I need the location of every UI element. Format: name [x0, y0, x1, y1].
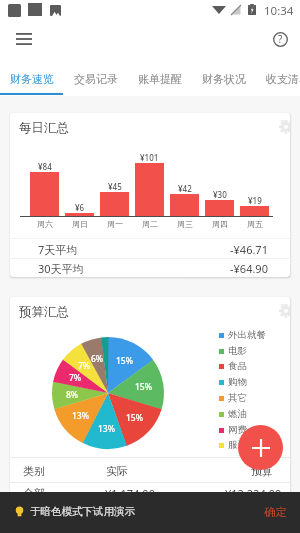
- staticText: 收支清单: [266, 72, 300, 86]
- staticText: 其它: [228, 392, 247, 404]
- staticText: 实际: [106, 464, 128, 478]
- staticText: 8%: [66, 389, 79, 401]
- staticText: 15%: [135, 381, 152, 393]
- staticText: 财务速览: [10, 72, 54, 86]
- staticText: 网费: [228, 424, 247, 436]
- staticText: 周二: [142, 219, 158, 229]
- staticText: 6%: [91, 353, 104, 365]
- staticText: 周三: [177, 219, 193, 229]
- staticText: 服装: [228, 439, 247, 451]
- button[interactable]: Add transaction: [238, 425, 283, 470]
- button[interactable]: 财务速览: [0, 65, 64, 93]
- button[interactable]: Settings: [276, 117, 290, 137]
- staticText: ¥6: [75, 202, 85, 213]
- button[interactable]: 7天平均: [10, 239, 290, 258]
- staticText: 周五: [247, 219, 263, 229]
- staticText: -¥64.90: [230, 261, 268, 276]
- button[interactable]: Help: [265, 24, 295, 54]
- staticText: 全部: [23, 486, 45, 500]
- staticText: 于暗色模式下试用演示: [30, 505, 135, 518]
- button[interactable]: 全部: [10, 483, 290, 505]
- staticText: 交易记录: [74, 72, 118, 86]
- staticText: ¥1,174.00: [105, 486, 155, 501]
- staticText: 燃油: [228, 408, 247, 420]
- button[interactable]: 确定: [256, 500, 294, 524]
- staticText: ¥12,224.00: [225, 486, 282, 501]
- staticText: 30天平均: [38, 261, 84, 276]
- staticText: 电影: [228, 345, 247, 357]
- button[interactable]: 账单提醒: [128, 65, 192, 93]
- button[interactable]: 交易记录: [64, 65, 128, 93]
- staticText: 7天平均: [38, 242, 78, 257]
- staticText: 7%: [78, 360, 91, 372]
- staticText: 购物: [228, 376, 247, 388]
- staticText: 15%: [126, 412, 143, 424]
- staticText: 15%: [116, 355, 133, 367]
- staticText: 13%: [98, 423, 115, 435]
- staticText: 周四: [212, 219, 228, 229]
- staticText: 周日: [72, 219, 88, 229]
- staticText: ¥84: [38, 161, 52, 172]
- staticText: ?: [278, 32, 283, 46]
- staticText: 确定: [264, 505, 287, 519]
- staticText: ¥42: [178, 183, 192, 194]
- staticText: 财务状况: [202, 72, 246, 86]
- staticText: ¥101: [140, 152, 159, 163]
- button[interactable]: 财务状况: [192, 65, 256, 93]
- button[interactable]: 收支清单: [256, 65, 300, 93]
- staticText: -¥46.71: [230, 242, 268, 257]
- staticText: 7%: [69, 372, 82, 384]
- button[interactable]: 类别: [10, 458, 290, 482]
- staticText: 每日汇总: [19, 120, 69, 136]
- button[interactable]: Settings: [276, 301, 290, 321]
- staticText: 10:34: [264, 3, 294, 19]
- staticText: 周一: [107, 219, 123, 229]
- staticText: 类别: [23, 464, 45, 478]
- staticText: 预算: [251, 464, 273, 478]
- staticText: ¥45: [108, 181, 122, 192]
- staticText: ¥30: [213, 189, 227, 200]
- staticText: 预算汇总: [19, 304, 69, 320]
- button[interactable]: 30天平均: [10, 259, 290, 277]
- button[interactable]: Navigation menu: [8, 25, 39, 53]
- staticText: 外出就餐: [228, 329, 266, 341]
- staticText: 食品: [228, 360, 247, 372]
- staticText: 账单提醒: [138, 72, 182, 86]
- staticText: ¥19: [248, 195, 262, 206]
- staticText: 周六: [37, 219, 53, 229]
- staticText: 13%: [72, 410, 89, 422]
